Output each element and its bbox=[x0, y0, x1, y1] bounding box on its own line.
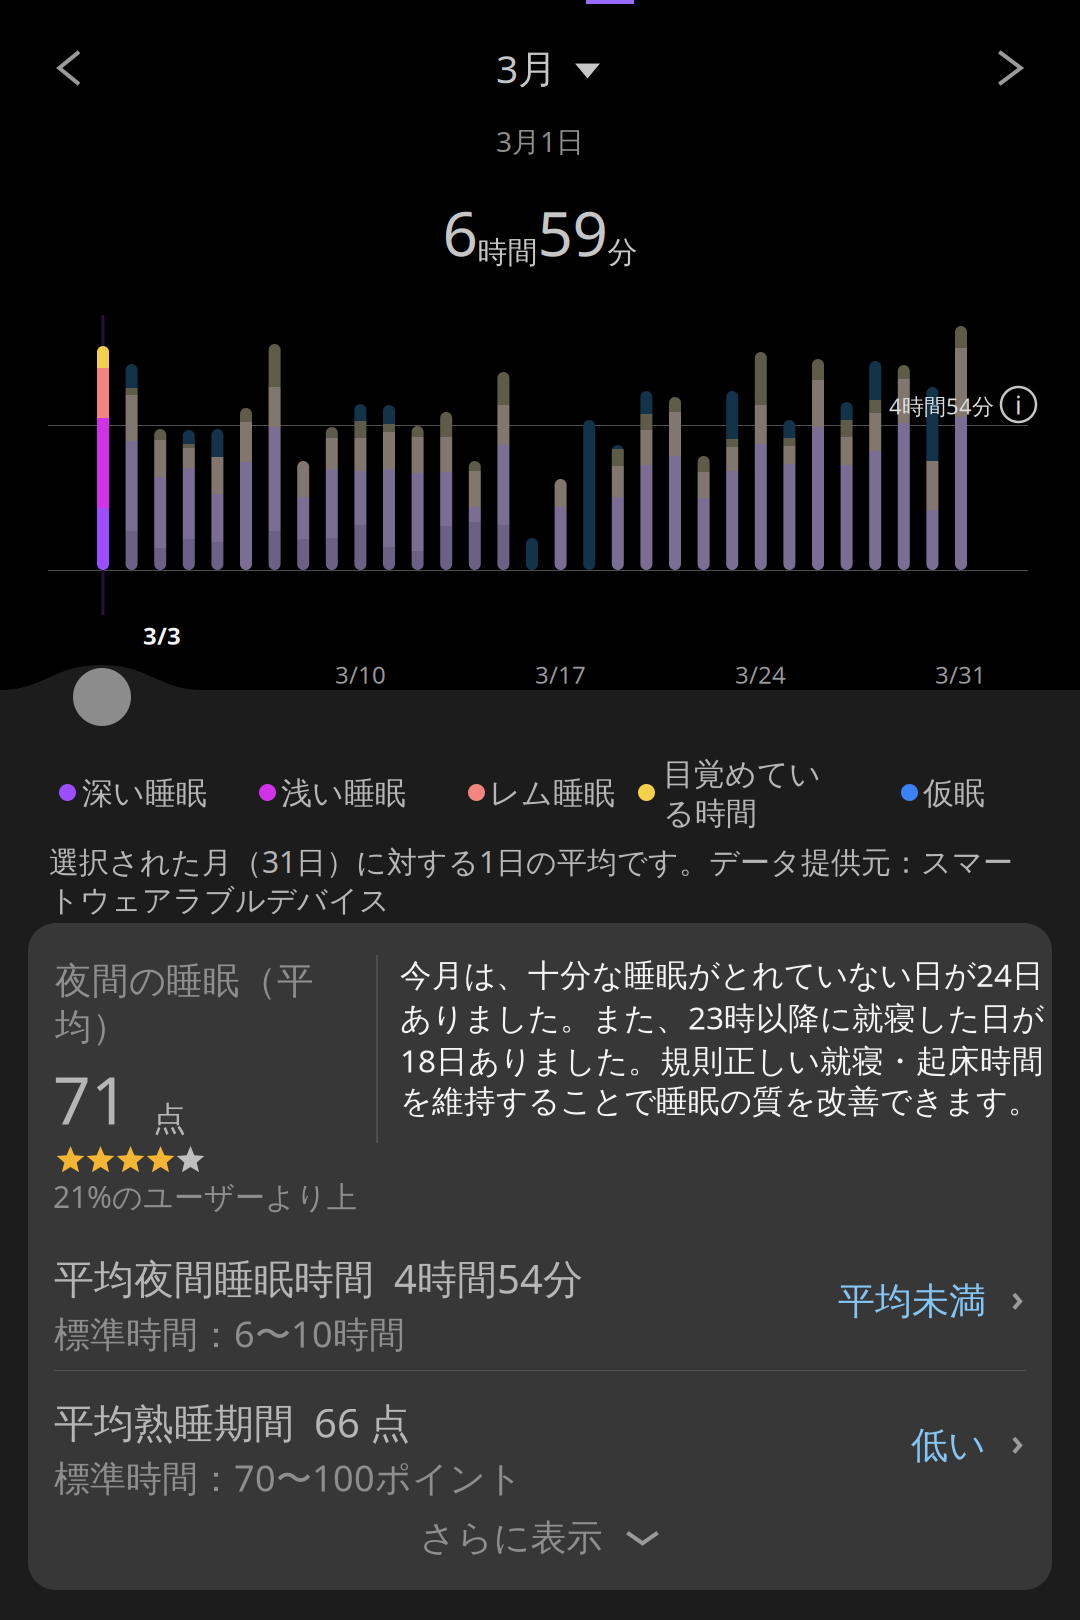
staticText: 3/24 bbox=[735, 658, 786, 691]
staticText: 今月は、十分な睡眠がとれていない日が24日ありました。また、23時以降に就寝した… bbox=[400, 953, 1044, 1121]
staticText: 標準時間：6〜10時間 bbox=[54, 1309, 405, 1358]
staticText: 4時間54分 bbox=[889, 391, 994, 421]
staticText: 6 bbox=[442, 190, 477, 274]
staticText: 3/31 bbox=[935, 658, 986, 691]
staticText: 平均未満 bbox=[838, 1278, 986, 1325]
button[interactable]: 前の月 bbox=[25, 23, 115, 113]
staticText: 点 bbox=[153, 1098, 186, 1140]
staticText: 仮眠 bbox=[923, 774, 985, 813]
staticText: 選択された月（31日）に対する1日の平均です。データ提供元：スマートウェアラブル… bbox=[49, 841, 1013, 920]
staticText: 時間 bbox=[477, 234, 537, 271]
staticText: 平均夜間睡眠時間 4時間54分 bbox=[54, 1251, 583, 1305]
button[interactable]: 平均熟睡期間 66 点 bbox=[28, 1385, 1052, 1513]
staticText: 夜間の睡眠（平均） bbox=[55, 958, 314, 1050]
staticText: 低い bbox=[911, 1422, 986, 1469]
staticText: 平均熟睡期間 66 点 bbox=[54, 1395, 410, 1449]
staticText: レム睡眠 bbox=[489, 774, 615, 813]
button[interactable]: 平均夜間睡眠時間 4時間54分 bbox=[28, 1241, 1052, 1369]
staticText: 3/17 bbox=[535, 658, 586, 691]
staticText: 3/3 bbox=[143, 619, 181, 652]
staticText: 71 bbox=[53, 1054, 129, 1144]
button[interactable]: さらに表示 bbox=[28, 1503, 1052, 1573]
staticText: 分 bbox=[607, 234, 637, 271]
staticText: i bbox=[1015, 387, 1022, 422]
staticText: 深い睡眠 bbox=[82, 774, 207, 813]
button[interactable]: 3月 bbox=[448, 23, 648, 113]
staticText: 3月 bbox=[496, 41, 557, 94]
button[interactable]: 次の月 bbox=[965, 23, 1055, 113]
staticText: 浅い睡眠 bbox=[281, 774, 406, 813]
staticText: 3/10 bbox=[335, 658, 386, 691]
staticText: 目覚めてい る時間 bbox=[663, 755, 821, 833]
staticText: 3月1日 bbox=[496, 122, 584, 160]
staticText: 21%のユーザーより上 bbox=[53, 1176, 357, 1217]
staticText: さらに表示 bbox=[419, 1515, 602, 1561]
staticText: 59 bbox=[537, 190, 607, 274]
staticText: 標準時間：70〜100ポイント bbox=[54, 1453, 523, 1502]
